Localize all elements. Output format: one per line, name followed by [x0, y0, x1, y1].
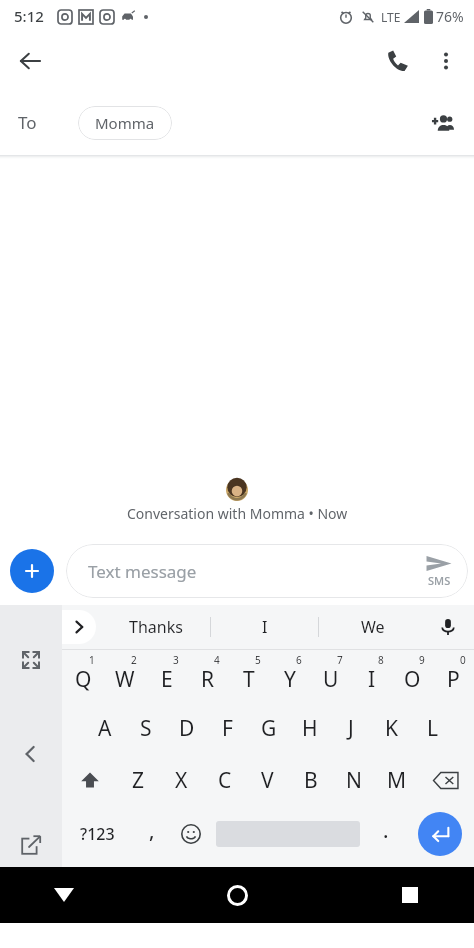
button[interactable]: Call — [374, 37, 422, 85]
staticText: Momma — [95, 113, 155, 133]
button[interactable]: H — [289, 702, 330, 754]
staticText: K — [385, 714, 398, 743]
staticText: Conversation with Momma • Now — [127, 504, 348, 523]
button[interactable]: Add attachment — [10, 549, 54, 593]
staticText: X — [175, 766, 188, 795]
button[interactable]: G — [248, 702, 289, 754]
button[interactable]: I — [351, 650, 392, 702]
staticText: F — [222, 714, 233, 743]
staticText: Thanks — [129, 616, 183, 638]
staticText: D — [179, 714, 195, 743]
button[interactable]: Y — [269, 650, 310, 702]
button[interactable]: E — [146, 650, 187, 702]
staticText: I — [262, 616, 268, 638]
staticText: E — [161, 665, 173, 694]
staticText: 5:12 — [14, 6, 44, 26]
staticText: . — [383, 817, 389, 844]
button[interactable]: X — [160, 754, 203, 806]
staticText: T — [243, 665, 255, 694]
button[interactable]: R — [187, 650, 228, 702]
button[interactable]: N — [332, 754, 375, 806]
button[interactable]: S — [125, 702, 166, 754]
staticText: M — [387, 766, 407, 795]
button[interactable]: D — [166, 702, 207, 754]
staticText: H — [302, 714, 318, 743]
button[interactable]: M — [375, 754, 418, 806]
staticText: , — [149, 817, 155, 844]
button[interactable]: Home — [213, 871, 261, 919]
button[interactable]: C — [203, 754, 246, 806]
button[interactable]: P — [433, 650, 474, 702]
staticText: G — [261, 714, 277, 743]
button[interactable]: J — [330, 702, 371, 754]
button[interactable]: Hide keyboard — [40, 871, 88, 919]
staticText: R — [201, 665, 215, 694]
button[interactable]: Expand keyboard — [8, 637, 54, 683]
button[interactable]: I — [211, 607, 318, 647]
button[interactable]: Q — [62, 650, 104, 702]
button[interactable]: Emoji — [171, 806, 210, 862]
staticText: L — [427, 714, 439, 743]
staticText: J — [348, 714, 354, 743]
button[interactable]: Recents — [386, 871, 434, 919]
staticText: P — [447, 665, 460, 694]
staticText: To — [18, 111, 37, 134]
staticText: 76% — [436, 7, 464, 26]
staticText: 6 — [296, 653, 302, 667]
button[interactable]: F — [207, 702, 248, 754]
staticText: S — [140, 714, 152, 743]
staticText: Q — [75, 665, 92, 694]
staticText: 8 — [378, 653, 384, 667]
staticText: 4 — [214, 653, 220, 667]
button[interactable]: U — [310, 650, 351, 702]
button[interactable]: Space — [210, 806, 366, 862]
button[interactable]: V — [246, 754, 289, 806]
button[interactable]: We — [319, 607, 426, 647]
button[interactable]: Text message — [66, 544, 468, 598]
button[interactable]: , — [132, 806, 171, 862]
button[interactable]: Thanks — [102, 607, 210, 647]
staticText: I — [368, 665, 376, 694]
button[interactable]: More options — [422, 37, 470, 85]
staticText: B — [304, 766, 318, 795]
staticText: SMS — [428, 573, 451, 588]
button[interactable]: Backspace — [418, 754, 474, 806]
button[interactable]: Open in new window — [8, 823, 54, 867]
button[interactable]: L — [412, 702, 453, 754]
staticText: O — [404, 665, 421, 694]
button[interactable]: ?123 — [62, 806, 132, 862]
staticText: ?123 — [80, 823, 115, 845]
staticText: Y — [284, 665, 296, 694]
staticText: U — [323, 665, 339, 694]
button[interactable]: Back — [6, 37, 54, 85]
button[interactable]: T — [228, 650, 269, 702]
button[interactable]: Voice input — [428, 607, 468, 647]
staticText: Z — [132, 766, 145, 795]
button[interactable]: W — [104, 650, 146, 702]
staticText: W — [115, 665, 135, 694]
staticText: Text message — [88, 560, 197, 583]
staticText: 0 — [460, 653, 466, 667]
button[interactable]: . — [366, 806, 405, 862]
button[interactable]: O — [392, 650, 433, 702]
button[interactable]: Z — [117, 754, 160, 806]
staticText: C — [218, 766, 232, 795]
staticText: N — [346, 766, 362, 795]
button[interactable]: Momma — [78, 106, 172, 140]
button[interactable]: A — [84, 702, 125, 754]
staticText: 5 — [255, 653, 261, 667]
staticText: 1 — [89, 653, 95, 667]
button[interactable]: Send SMS — [426, 555, 452, 588]
button[interactable]: More suggestions — [62, 610, 96, 644]
staticText: 9 — [419, 653, 425, 667]
staticText: 7 — [337, 653, 343, 667]
button[interactable]: B — [289, 754, 332, 806]
staticText: LTE — [381, 9, 401, 25]
button[interactable]: Shift — [62, 754, 117, 806]
button[interactable]: Enter — [418, 812, 462, 856]
button[interactable]: Previous — [8, 731, 54, 777]
staticText: 3 — [173, 653, 179, 667]
button[interactable]: Add people — [420, 100, 466, 146]
staticText: 2 — [131, 653, 137, 667]
button[interactable]: K — [371, 702, 412, 754]
